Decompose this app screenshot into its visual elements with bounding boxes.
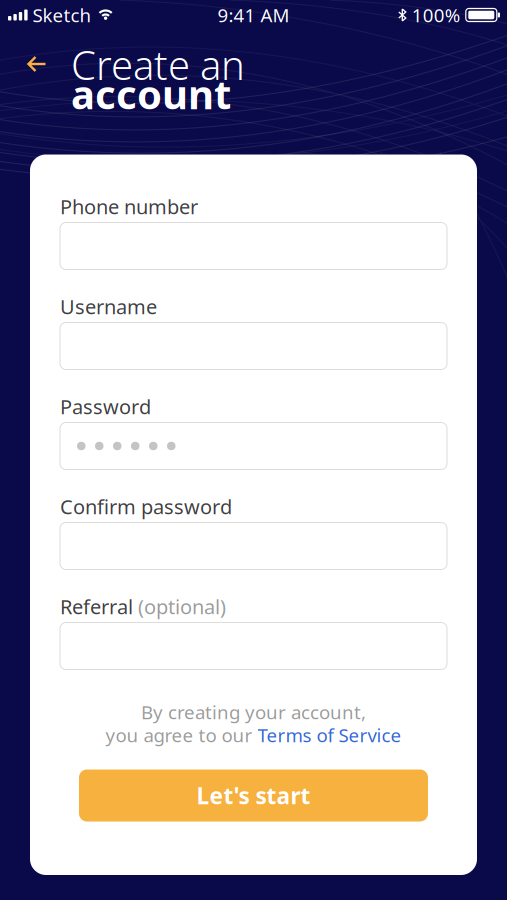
- staticText: Password: [60, 393, 151, 420]
- button[interactable]: Let's start: [79, 769, 428, 821]
- button[interactable]: Username text field: [60, 322, 447, 369]
- staticText: 100%: [412, 3, 461, 27]
- staticText: Confirm password: [60, 493, 232, 520]
- staticText: Let's start: [196, 780, 310, 810]
- button[interactable]: Password text field: [60, 422, 447, 469]
- button[interactable]: Referral text field: [60, 622, 447, 669]
- staticText: Terms of Service: [257, 723, 401, 747]
- button[interactable]: Confirm password text field: [60, 522, 447, 569]
- staticText: account: [71, 67, 231, 120]
- staticText: Referral: [60, 593, 133, 620]
- button[interactable]: Phone number text field: [60, 222, 447, 269]
- staticText: By creating your account,: [141, 700, 366, 724]
- staticText: Sketch: [33, 3, 92, 27]
- button[interactable]: Back: [19, 48, 55, 80]
- staticText: (optional): [133, 593, 226, 620]
- button[interactable]: Terms of Service: [257, 723, 401, 747]
- staticText: you agree to our: [105, 723, 257, 747]
- staticText: Create an: [71, 38, 245, 91]
- staticText: Phone number: [60, 193, 198, 220]
- staticText: 9:41 AM: [217, 3, 289, 27]
- staticText: Username: [60, 293, 157, 320]
